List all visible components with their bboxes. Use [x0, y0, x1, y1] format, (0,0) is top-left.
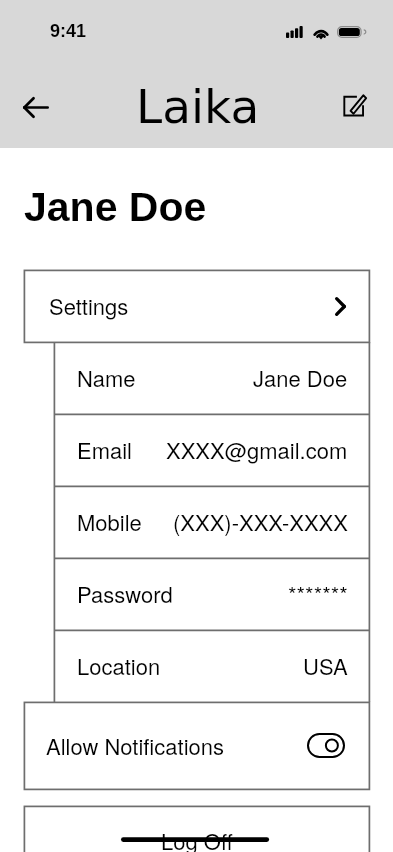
- staticText: Settings: [49, 290, 129, 322]
- button[interactable]: Password: [54, 558, 369, 630]
- staticText: USA: [303, 650, 348, 682]
- button[interactable]: Email: [54, 414, 369, 486]
- staticText: Email: [77, 434, 133, 466]
- staticText: Location: [77, 650, 161, 682]
- staticText: 9:41: [50, 21, 87, 41]
- button[interactable]: Allow Notifications: [24, 702, 369, 789]
- button[interactable]: Name: [54, 342, 369, 414]
- staticText: Laika: [136, 79, 260, 134]
- button[interactable]: Mobile: [54, 486, 369, 558]
- button[interactable]: Edit: [343, 93, 367, 117]
- button[interactable]: Allow notifications toggle: [307, 733, 345, 758]
- staticText: *******: [288, 578, 348, 610]
- staticText: Log Off: [161, 825, 233, 852]
- staticText: Password: [77, 578, 173, 610]
- button[interactable]: Settings: [24, 270, 369, 342]
- button[interactable]: Location: [54, 630, 369, 702]
- staticText: Jane Doe: [253, 362, 348, 394]
- staticText: Name: [77, 362, 136, 394]
- staticText: Jane Doe: [24, 184, 207, 230]
- staticText: Mobile: [77, 506, 142, 538]
- staticText: Allow Notifications: [46, 730, 225, 762]
- staticText: XXXX@gmail.com: [166, 434, 348, 466]
- button[interactable]: Back: [23, 98, 49, 117]
- button[interactable]: Log Off: [24, 806, 369, 852]
- staticText: (XXX)-XXX-XXXX: [173, 506, 348, 538]
